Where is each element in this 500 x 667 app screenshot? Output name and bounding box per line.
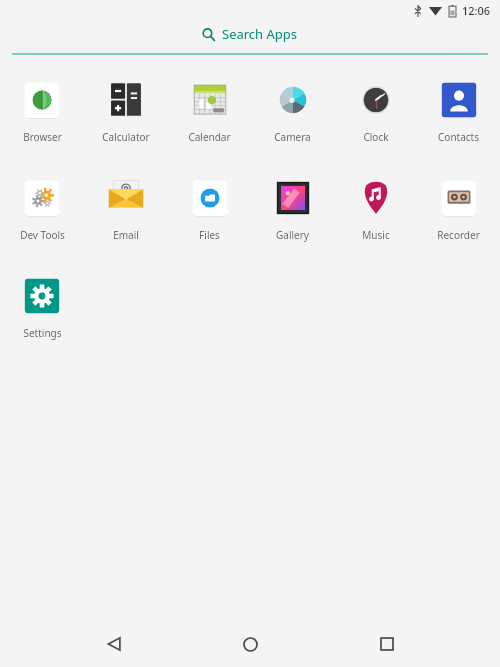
staticText: Email <box>113 228 139 242</box>
button[interactable]: Browser <box>0 75 84 147</box>
button[interactable]: Gallery <box>251 173 334 245</box>
staticText: Clock <box>363 130 389 144</box>
button[interactable]: Calendar <box>168 75 251 147</box>
staticText: Camera <box>274 130 311 144</box>
staticText: Browser <box>23 130 62 144</box>
button[interactable]: Back <box>91 621 137 667</box>
button[interactable]: Clock <box>334 75 417 147</box>
button[interactable]: Settings <box>0 271 84 343</box>
button[interactable]: Home <box>227 621 273 667</box>
button[interactable]: Camera <box>251 75 334 147</box>
staticText: Files <box>199 228 220 242</box>
button[interactable]: Recent apps <box>364 621 410 667</box>
staticText: Search Apps <box>222 25 298 43</box>
button[interactable]: Contacts <box>417 75 500 147</box>
staticText: 12:06 <box>462 3 491 18</box>
button[interactable]: Search Apps <box>0 20 500 48</box>
button[interactable]: Calculator <box>84 75 168 147</box>
button[interactable]: Music <box>334 173 417 245</box>
staticText: Calculator <box>102 130 150 144</box>
staticText: Recorder <box>437 228 480 242</box>
staticText: Contacts <box>438 130 479 144</box>
staticText: Settings <box>23 326 62 340</box>
staticText: Music <box>362 228 390 242</box>
staticText: Dev Tools <box>20 228 65 242</box>
staticText: Calendar <box>188 130 231 144</box>
button[interactable]: Dev Tools <box>0 173 84 245</box>
button[interactable]: Files <box>168 173 251 245</box>
staticText: Gallery <box>276 228 309 242</box>
button[interactable]: Email <box>84 173 168 245</box>
button[interactable]: Recorder <box>417 173 500 245</box>
